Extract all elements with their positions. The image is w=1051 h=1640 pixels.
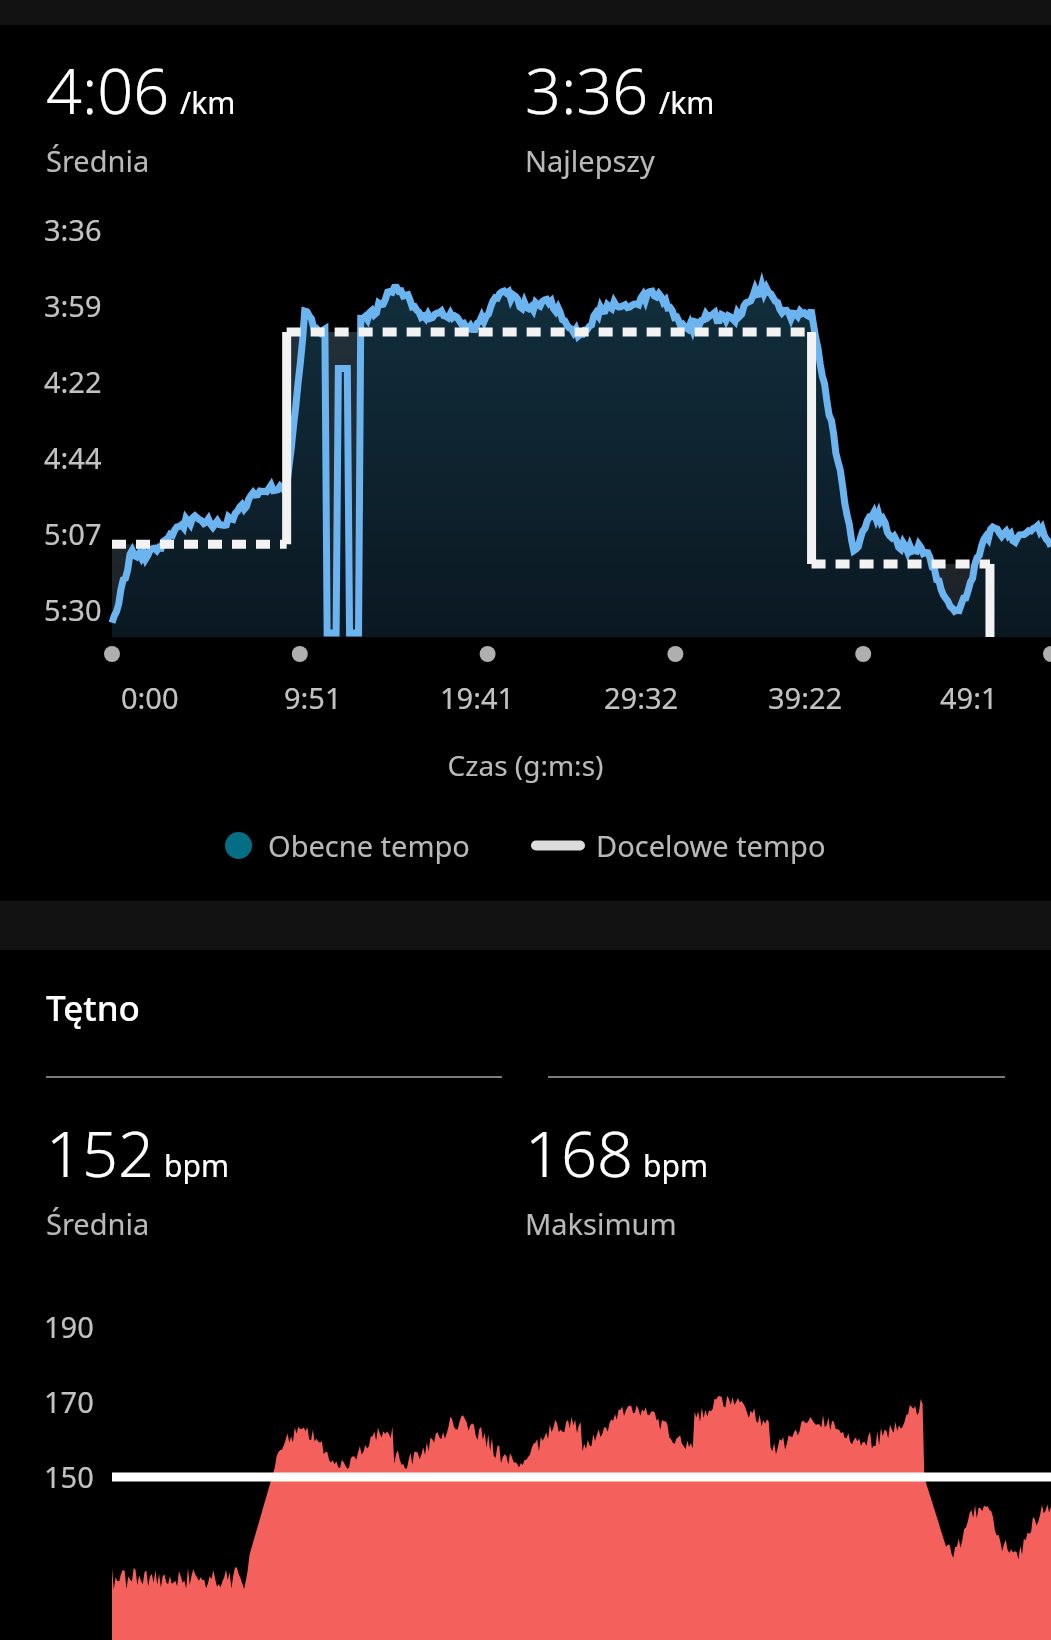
staticText: 39:22: [768, 678, 843, 717]
staticText: Średnia: [46, 141, 150, 180]
button[interactable]: 4:06: [46, 47, 236, 180]
staticText: 19:41: [440, 678, 515, 717]
staticText: Maksimum: [525, 1204, 677, 1243]
staticText: 150: [44, 1457, 94, 1496]
staticText: 5:30: [44, 590, 102, 629]
staticText: bpm: [164, 1145, 229, 1186]
staticText: /km: [659, 82, 715, 123]
staticText: Czas (g:m:s): [0, 746, 1051, 784]
staticText: 168: [525, 1110, 633, 1196]
staticText: bpm: [643, 1145, 708, 1186]
staticText: 4:22: [44, 362, 102, 401]
button[interactable]: 190: [0, 1289, 1051, 1640]
staticText: 49:1: [940, 678, 998, 717]
staticText: 3:36: [44, 210, 102, 249]
staticText: 3:36: [525, 47, 649, 133]
button[interactable]: 168: [525, 1110, 708, 1243]
staticText: 29:32: [604, 678, 679, 717]
button[interactable]: 3:36: [0, 224, 1051, 724]
staticText: Docelowe tempo: [596, 826, 826, 865]
staticText: 5:07: [44, 514, 102, 553]
staticText: 4:06: [46, 47, 170, 133]
staticText: 0:00: [121, 678, 179, 717]
staticText: 4:44: [44, 438, 102, 477]
staticText: 152: [46, 1110, 154, 1196]
button[interactable]: Docelowe tempo: [536, 826, 826, 865]
button[interactable]: 152: [46, 1110, 229, 1243]
staticText: /km: [180, 82, 236, 123]
staticText: Najlepszy: [525, 141, 655, 180]
staticText: 3:59: [44, 286, 102, 325]
button[interactable]: Obecne tempo: [225, 826, 470, 865]
button[interactable]: 3:36: [525, 47, 715, 180]
staticText: 9:51: [284, 678, 342, 717]
staticText: Obecne tempo: [268, 826, 470, 865]
staticText: 190: [44, 1307, 94, 1346]
staticText: 170: [44, 1382, 94, 1421]
staticText: Średnia: [46, 1204, 150, 1243]
staticText: Tętno: [46, 984, 140, 1032]
